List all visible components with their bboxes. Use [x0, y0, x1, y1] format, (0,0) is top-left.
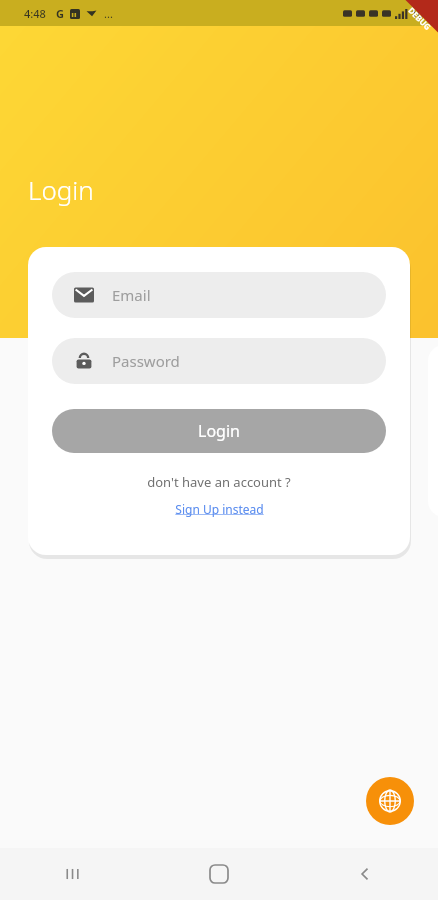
button[interactable]: Email	[52, 272, 386, 318]
staticText: don't have an account ?	[52, 473, 386, 491]
button[interactable]: Sign Up instead	[52, 501, 386, 517]
staticText: Sign Up instead	[175, 501, 264, 517]
staticText: Login	[198, 420, 240, 442]
staticText: Email	[112, 285, 151, 305]
staticText: G	[56, 6, 64, 21]
staticText: ...	[104, 6, 113, 21]
button[interactable]: Recents	[0, 848, 146, 900]
staticText: Password	[112, 351, 180, 371]
button[interactable]: Change language	[366, 777, 414, 825]
staticText: Login	[28, 172, 94, 207]
button[interactable]: Login	[52, 409, 386, 453]
staticText: DEBUG	[406, 5, 434, 32]
button[interactable]: Password	[52, 338, 386, 384]
staticText: 100	[411, 6, 430, 21]
staticText: 4:48	[24, 6, 46, 21]
button[interactable]: Home	[146, 848, 292, 900]
button[interactable]: Back	[292, 848, 438, 900]
